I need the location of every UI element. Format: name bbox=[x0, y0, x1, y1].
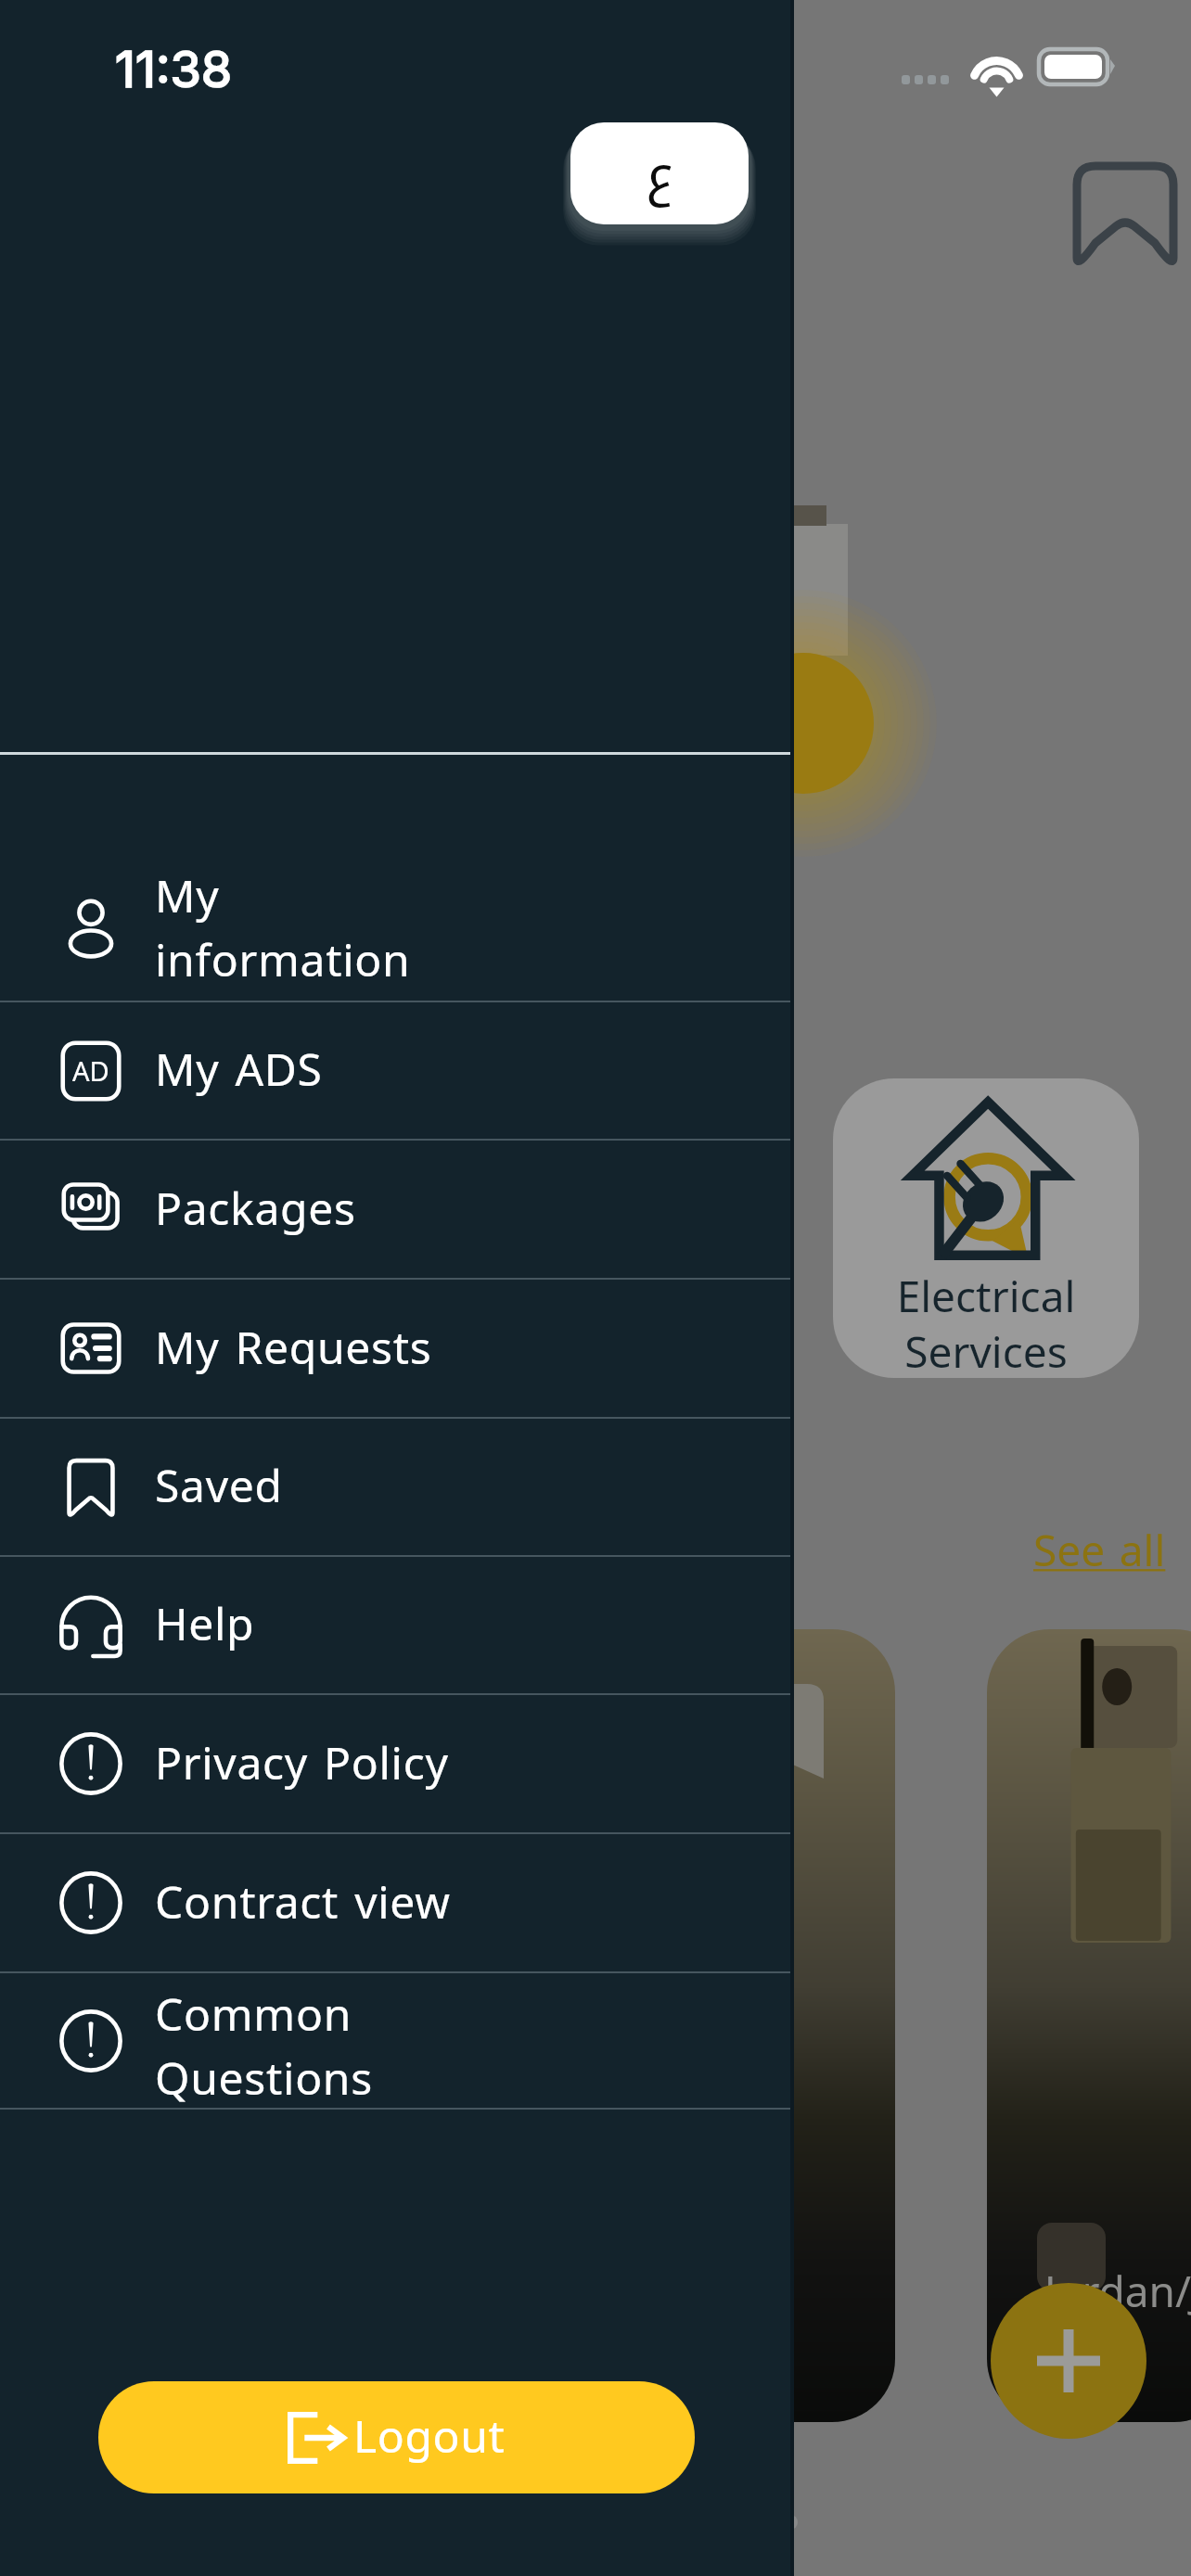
button[interactable]: Packages bbox=[0, 1141, 794, 1278]
staticText: 11:38 bbox=[115, 39, 233, 99]
staticText: My ADS bbox=[155, 1028, 323, 1113]
button[interactable]: See all bbox=[1033, 1511, 1166, 1592]
button[interactable] bbox=[645, 1629, 895, 2422]
staticText: Help bbox=[155, 1583, 255, 1667]
staticText: Saved bbox=[155, 1445, 283, 1529]
staticText: AD bbox=[72, 1047, 109, 1098]
button[interactable]: Saved bbox=[0, 1419, 794, 1555]
button[interactable]: My information bbox=[0, 755, 794, 1001]
button[interactable]: Privacy Policy bbox=[0, 1695, 794, 1832]
button[interactable]: Contract view bbox=[0, 1834, 794, 1971]
button[interactable]: Switch language to Arabic bbox=[570, 122, 749, 224]
staticText: Contract view bbox=[155, 1861, 451, 1945]
button[interactable]: Logout bbox=[98, 2381, 695, 2493]
staticText: My Requests bbox=[155, 1307, 432, 1391]
button[interactable]: Add bbox=[991, 2283, 1146, 2439]
staticText: Jordan/J bbox=[1044, 2252, 1191, 2333]
staticText: See all bbox=[1033, 1511, 1166, 1592]
staticText: Common Questions bbox=[155, 1973, 373, 2108]
button[interactable]: My Requests bbox=[0, 1280, 794, 1417]
button[interactable]: Common Questions bbox=[0, 1973, 794, 2108]
staticText: Logout bbox=[353, 2395, 506, 2480]
staticText: Packages bbox=[155, 1167, 356, 1252]
staticText: My information bbox=[155, 855, 411, 1001]
button[interactable]: Jordan/J bbox=[987, 1629, 1191, 2422]
button[interactable]: Help bbox=[0, 1557, 794, 1693]
staticText: Electrical Services bbox=[833, 1257, 1139, 1378]
button[interactable]: AD bbox=[0, 1002, 794, 1139]
staticText: ع bbox=[646, 124, 673, 223]
staticText: Privacy Policy bbox=[155, 1722, 449, 1806]
button[interactable]: Electrical Services bbox=[833, 1078, 1139, 1378]
